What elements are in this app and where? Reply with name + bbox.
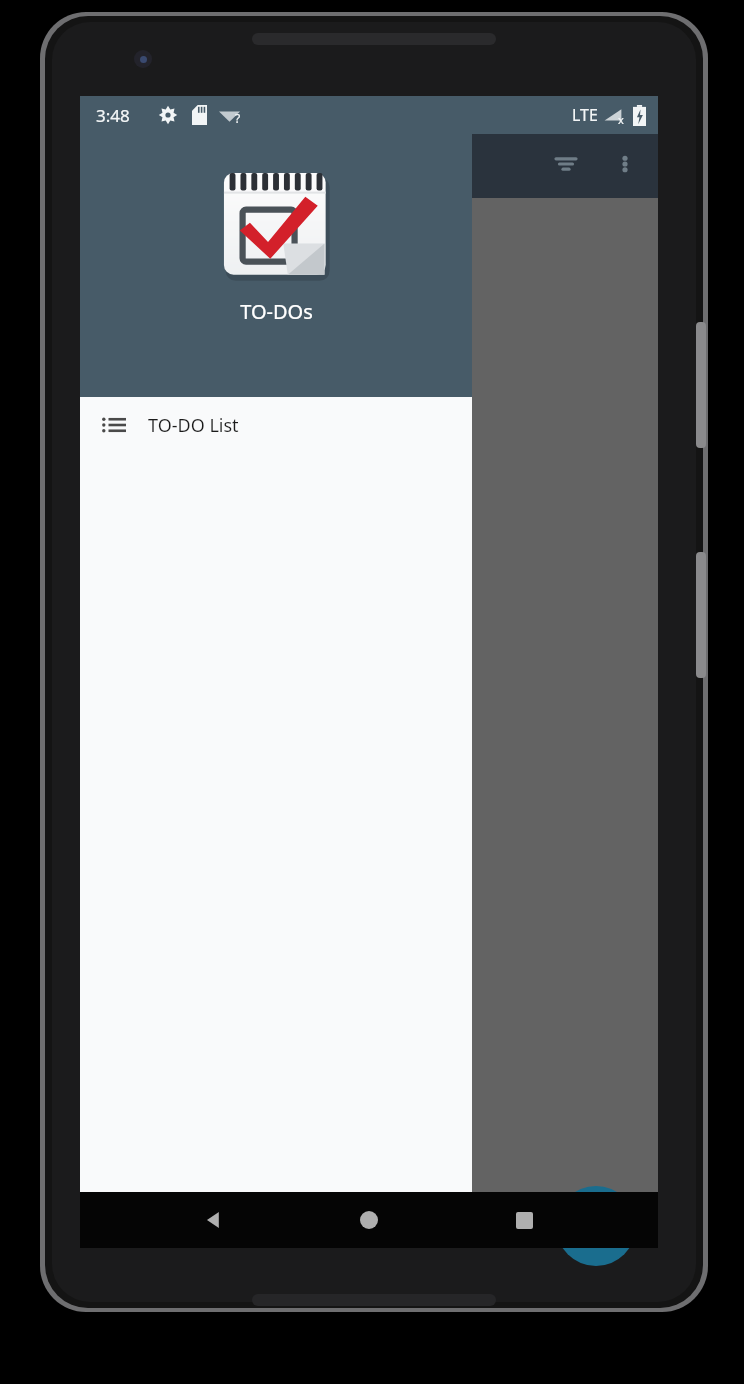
button[interactable]: Sort [542, 140, 590, 188]
button[interactable]: More options [601, 140, 649, 188]
button[interactable]: Recent apps [496, 1192, 552, 1248]
button[interactable]: Back [186, 1192, 242, 1248]
button[interactable]: Home [341, 1192, 397, 1248]
staticText: TO-DO List [148, 413, 239, 438]
staticText: ? [235, 110, 241, 126]
staticText: x [618, 112, 624, 127]
staticText: TO-DOs [240, 298, 313, 325]
staticText: 3:48 [96, 104, 130, 127]
button[interactable]: Add to-do [556, 1186, 636, 1266]
button[interactable]: TO-DO List [80, 397, 472, 453]
staticText: LTE [572, 104, 598, 126]
